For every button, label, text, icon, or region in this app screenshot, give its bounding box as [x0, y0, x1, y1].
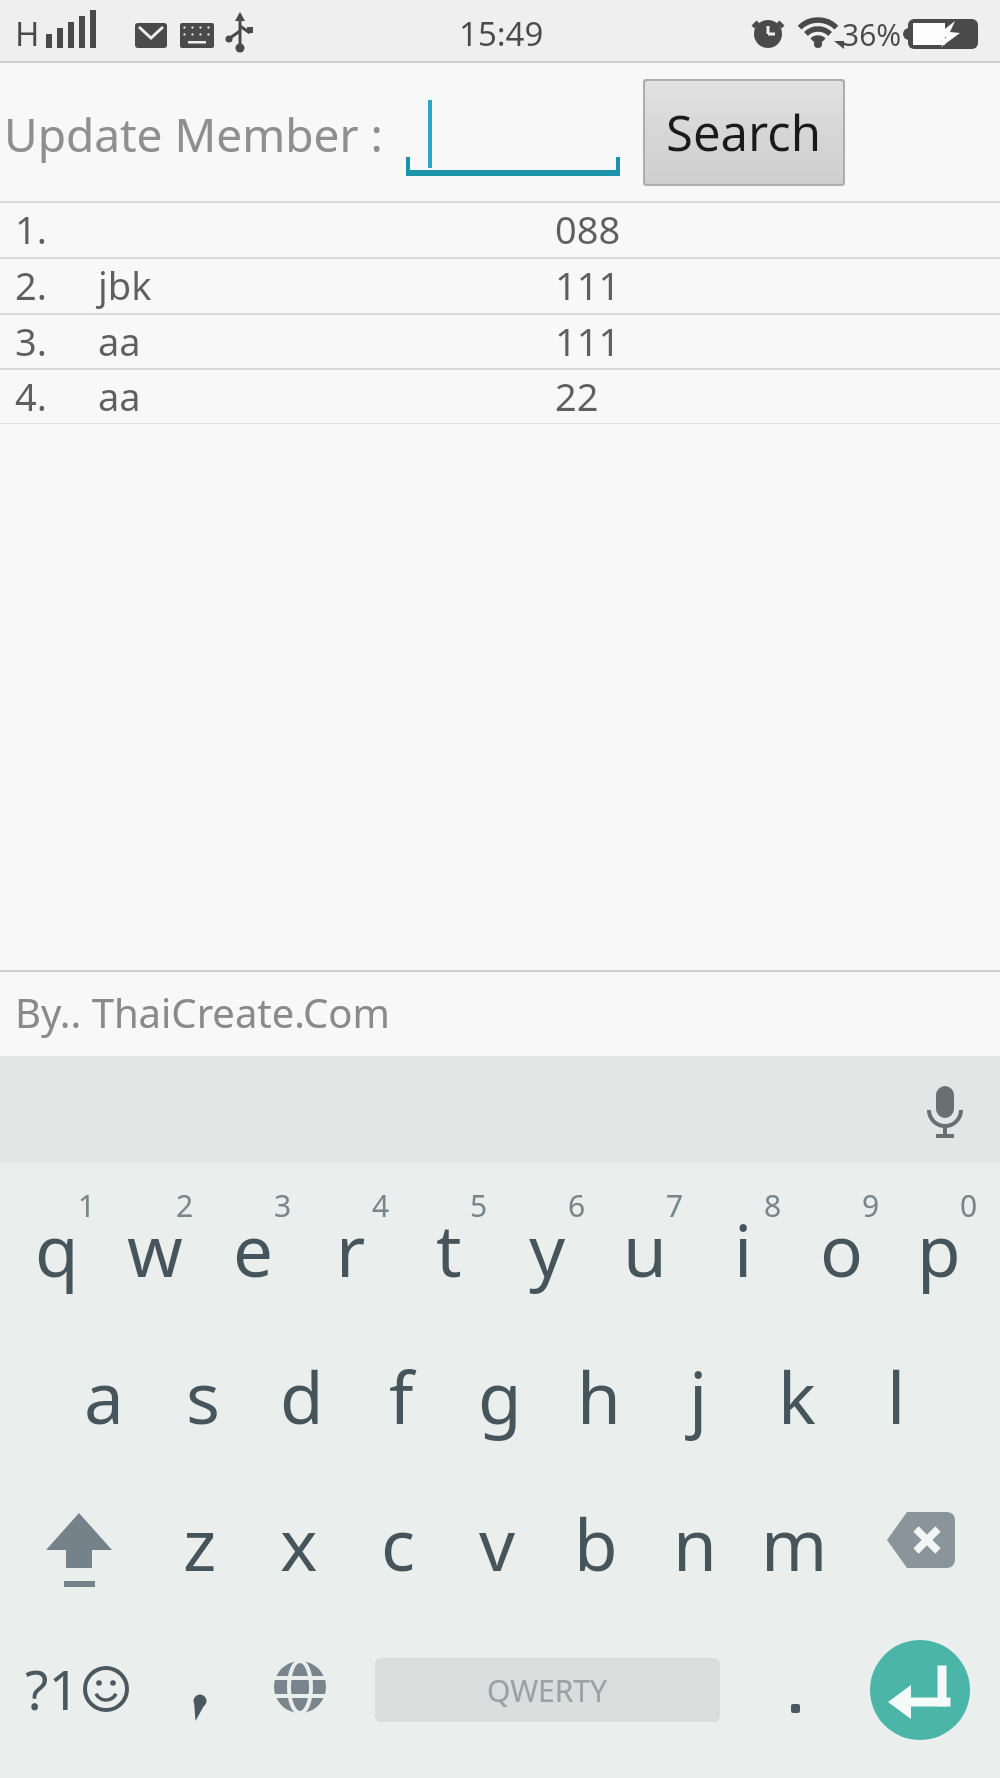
- button[interactable]: u: [596, 1163, 694, 1310]
- staticText: 6: [568, 1185, 586, 1225]
- staticText: 0: [960, 1185, 978, 1225]
- button[interactable]: w: [106, 1163, 204, 1310]
- staticText: 3.: [15, 315, 47, 367]
- button[interactable]: t: [400, 1163, 498, 1310]
- button[interactable]: v: [448, 1457, 546, 1604]
- button[interactable]: QWERTY: [375, 1658, 720, 1722]
- staticText: n: [673, 1495, 717, 1592]
- staticText: Update Member :: [4, 103, 383, 166]
- button[interactable]: [10, 1630, 140, 1750]
- staticText: 1.: [15, 203, 47, 255]
- staticText: c: [381, 1495, 416, 1592]
- button[interactable]: [20, 1480, 140, 1590]
- staticText: q: [35, 1201, 79, 1298]
- staticText: h: [577, 1348, 621, 1445]
- button[interactable]: b: [547, 1457, 645, 1604]
- staticText: By.. ThaiCreate.Com: [15, 985, 390, 1039]
- staticText: 1: [78, 1185, 96, 1225]
- button[interactable]: [860, 1480, 980, 1590]
- staticText: Search: [666, 99, 822, 166]
- button[interactable]: [755, 1630, 845, 1750]
- staticText: 4: [372, 1185, 390, 1225]
- button[interactable]: [0, 257, 1000, 312]
- staticText: 4.: [15, 370, 47, 422]
- button[interactable]: s: [154, 1310, 252, 1457]
- staticText: w: [127, 1201, 183, 1298]
- staticText: g: [478, 1348, 522, 1445]
- button[interactable]: e: [204, 1163, 302, 1310]
- staticText: b: [574, 1495, 618, 1592]
- staticText: t: [436, 1201, 462, 1298]
- staticText: H: [15, 11, 40, 56]
- staticText: z: [183, 1495, 217, 1592]
- staticText: 8: [764, 1185, 782, 1225]
- staticText: ?1: [25, 1652, 80, 1726]
- staticText: 111: [555, 259, 621, 311]
- button[interactable]: i: [694, 1163, 792, 1310]
- staticText: a: [84, 1348, 124, 1445]
- staticText: u: [623, 1201, 667, 1298]
- staticText: j: [689, 1348, 708, 1445]
- button[interactable]: [0, 201, 1000, 256]
- button[interactable]: d: [253, 1310, 351, 1457]
- button[interactable]: g: [451, 1310, 549, 1457]
- button[interactable]: [0, 368, 1000, 423]
- button[interactable]: Search: [643, 79, 845, 186]
- staticText: 2: [176, 1185, 194, 1225]
- staticText: 2.: [15, 259, 47, 311]
- button[interactable]: q: [8, 1163, 106, 1310]
- button[interactable]: z: [151, 1457, 249, 1604]
- button[interactable]: x: [250, 1457, 348, 1604]
- button[interactable]: p: [890, 1163, 988, 1310]
- staticText: e: [233, 1201, 274, 1298]
- staticText: QWERTY: [487, 1670, 608, 1711]
- staticText: r: [336, 1201, 366, 1298]
- button[interactable]: m: [745, 1457, 843, 1604]
- button[interactable]: k: [748, 1310, 846, 1457]
- button[interactable]: [870, 1640, 970, 1740]
- staticText: m: [761, 1495, 828, 1592]
- button[interactable]: j: [649, 1310, 747, 1457]
- button[interactable]: y: [498, 1163, 596, 1310]
- staticText: 15:49: [459, 11, 544, 56]
- button[interactable]: h: [550, 1310, 648, 1457]
- button[interactable]: a: [55, 1310, 153, 1457]
- staticText: 22: [555, 370, 599, 422]
- staticText: k: [778, 1348, 816, 1445]
- staticText: aa: [98, 315, 141, 367]
- staticText: i: [734, 1201, 753, 1298]
- staticText: 7: [666, 1185, 684, 1225]
- button[interactable]: o: [792, 1163, 890, 1310]
- staticText: d: [280, 1348, 324, 1445]
- staticText: o: [820, 1201, 863, 1298]
- staticText: 088: [555, 203, 621, 255]
- button[interactable]: r: [302, 1163, 400, 1310]
- staticText: 36%: [842, 14, 902, 55]
- button[interactable]: f: [352, 1310, 450, 1457]
- staticText: y: [529, 1201, 566, 1298]
- button[interactable]: [255, 1630, 345, 1750]
- button[interactable]: n: [646, 1457, 744, 1604]
- staticText: x: [280, 1495, 318, 1592]
- staticText: p: [917, 1201, 961, 1298]
- staticText: f: [389, 1348, 414, 1445]
- staticText: v: [479, 1495, 516, 1592]
- staticText: aa: [98, 370, 141, 422]
- staticText: jbk: [98, 259, 152, 311]
- staticText: 5: [470, 1185, 488, 1225]
- staticText: 111: [555, 315, 621, 367]
- button[interactable]: [0, 313, 1000, 368]
- button[interactable]: [160, 1630, 250, 1750]
- staticText: l: [887, 1348, 906, 1445]
- button[interactable]: l: [847, 1310, 945, 1457]
- staticText: 3: [274, 1185, 292, 1225]
- staticText: 9: [862, 1185, 880, 1225]
- staticText: s: [186, 1348, 221, 1445]
- button[interactable]: c: [349, 1457, 447, 1604]
